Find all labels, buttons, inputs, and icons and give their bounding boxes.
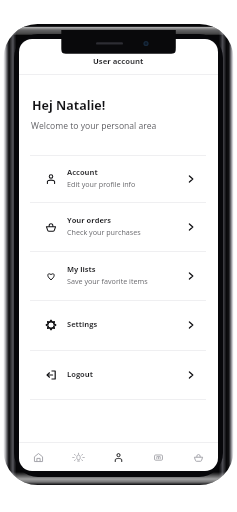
button[interactable]: User account [19, 39, 218, 74]
staticText: Logout [67, 369, 93, 379]
staticText: My lists [67, 264, 96, 274]
button[interactable]: Inspiration [58, 443, 98, 471]
staticText: Check your purchases [67, 227, 141, 237]
button[interactable]: Home [19, 443, 58, 471]
button[interactable]: Cart [178, 443, 218, 471]
button[interactable]: Profile [98, 443, 138, 471]
button[interactable]: Your orders [19, 202, 218, 251]
staticText: Account [67, 167, 98, 177]
staticText: User account [93, 56, 144, 66]
button[interactable]: My lists [19, 251, 218, 300]
staticText: Settings [67, 319, 98, 329]
button[interactable]: Store [138, 443, 178, 471]
staticText: Your orders [67, 215, 111, 225]
staticText: Welcome to your personal area [31, 120, 157, 132]
button[interactable]: Account [19, 155, 218, 203]
button[interactable]: Settings [19, 300, 218, 350]
staticText: Edit your profile info [67, 179, 136, 189]
staticText: Save your favorite items [67, 276, 148, 286]
button[interactable]: Logout [19, 350, 218, 399]
staticText: Hej Natalie! [32, 97, 106, 114]
